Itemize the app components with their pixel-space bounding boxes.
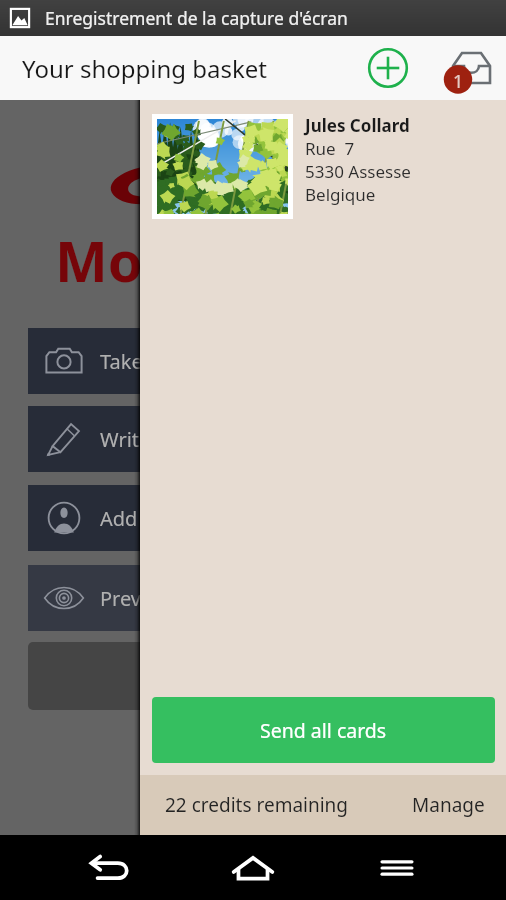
button[interactable]: Back xyxy=(74,835,144,900)
button[interactable]: Basket xyxy=(437,37,499,99)
button[interactable]: Jules Collard xyxy=(140,100,506,233)
button[interactable]: Recents xyxy=(362,835,432,900)
button[interactable]: Add card xyxy=(366,46,410,90)
staticText: Write text xyxy=(100,426,192,453)
staticText: 1 xyxy=(453,69,464,94)
staticText: Send all cards xyxy=(260,717,387,744)
staticText: Belgique xyxy=(305,183,376,206)
button[interactable]: Take a photo xyxy=(28,328,288,394)
staticText: Your shopping basket xyxy=(22,52,268,85)
staticText: Enregistrement de la capture d'écran xyxy=(45,6,348,30)
button[interactable]: Preview xyxy=(28,565,288,631)
button[interactable]: Send all cards xyxy=(152,697,495,763)
staticText: Manage xyxy=(412,792,485,818)
staticText: 5330 Assesse xyxy=(305,160,411,183)
staticText: Jules Collard xyxy=(305,114,410,137)
staticText: Preview xyxy=(100,585,173,612)
staticText: 22 credits remaining xyxy=(165,792,349,818)
staticText: Add address xyxy=(100,505,217,532)
staticText: MonC xyxy=(55,222,216,298)
staticText: Rue 7 xyxy=(305,137,355,160)
button[interactable]: Add address xyxy=(28,485,288,551)
button[interactable]: Manage xyxy=(400,782,506,828)
button[interactable]: Home xyxy=(218,835,288,900)
staticText: Take a photo xyxy=(100,348,221,375)
button[interactable]: Write text xyxy=(28,406,288,472)
